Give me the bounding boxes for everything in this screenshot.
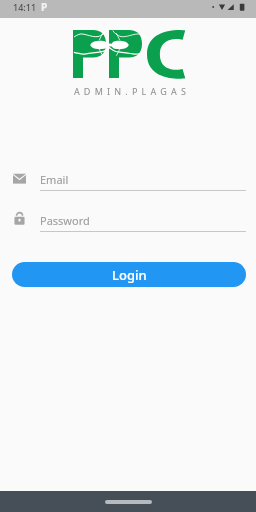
staticText: 14:11 (13, 1, 37, 13)
staticText: Email (40, 172, 69, 187)
button[interactable]: Login (12, 262, 246, 287)
staticText: Password (40, 213, 90, 228)
staticText: ADMIN.PLAGAS (4, 85, 256, 97)
staticText: Login (112, 266, 147, 284)
staticText: P (41, 0, 48, 14)
